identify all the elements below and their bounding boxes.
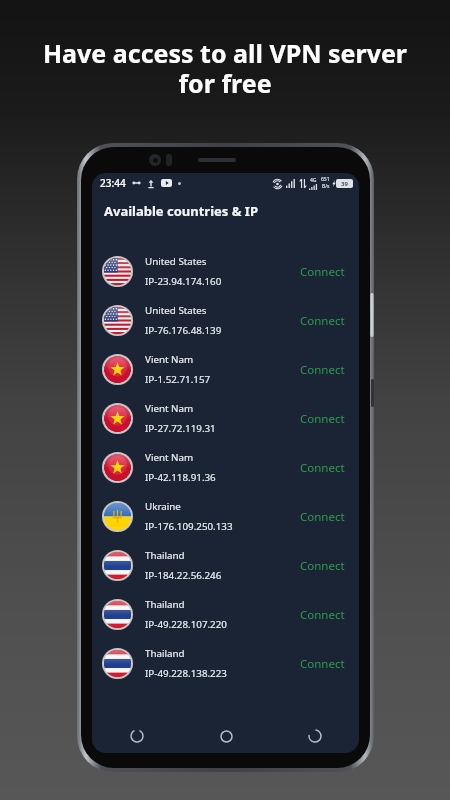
button[interactable]: Connect <box>298 502 347 532</box>
button[interactable]: Connect <box>298 306 347 336</box>
button[interactable]: Connect <box>298 257 347 287</box>
button[interactable]: Vient Nam <box>92 394 359 443</box>
staticText: Ukraine <box>145 500 181 513</box>
staticText: Available countries & IP <box>104 202 258 220</box>
button[interactable]: Thailand <box>92 639 359 688</box>
staticText: Thailand <box>145 549 185 562</box>
staticText: Connect <box>300 656 345 672</box>
staticText: Connect <box>300 607 345 623</box>
staticText: IP-184.22.56.246 <box>145 569 222 582</box>
staticText: IP-49.228.107.220 <box>145 618 227 631</box>
button[interactable]: United States <box>92 296 359 345</box>
staticText: IP-23.94.174.160 <box>145 275 222 288</box>
staticText: IP-42.118.91.36 <box>145 471 216 484</box>
button[interactable]: Connect <box>298 551 347 581</box>
button[interactable]: Connect <box>298 404 347 434</box>
staticText: Thailand <box>145 647 185 660</box>
staticText: IP-27.72.119.31 <box>145 422 216 435</box>
button[interactable]: Home <box>211 721 241 751</box>
staticText: Connect <box>300 313 345 329</box>
staticText: Connect <box>300 411 345 427</box>
staticText: 651 <box>321 176 330 183</box>
staticText: Vient Nam <box>145 353 194 366</box>
button[interactable]: Back <box>300 721 330 751</box>
button[interactable]: Recent apps <box>122 721 152 751</box>
button[interactable]: Connect <box>298 355 347 385</box>
staticText: Vient Nam <box>145 451 194 464</box>
button[interactable]: Ukraine <box>92 492 359 541</box>
staticText: B/s <box>322 183 330 190</box>
staticText: IP-1.52.71.157 <box>145 373 211 386</box>
staticText: Connect <box>300 362 345 378</box>
staticText: Connect <box>300 460 345 476</box>
button[interactable]: United States <box>92 247 359 296</box>
staticText: Vient Nam <box>145 402 194 415</box>
button[interactable]: Thailand <box>92 590 359 639</box>
staticText: IP-49.228.138.223 <box>145 667 227 680</box>
button[interactable]: Vient Nam <box>92 345 359 394</box>
staticText: 39 <box>341 180 348 188</box>
button[interactable]: Thailand <box>92 541 359 590</box>
staticText: Have access to all VPN server for free <box>12 36 438 101</box>
staticText: Connect <box>300 509 345 525</box>
button[interactable]: Connect <box>298 600 347 630</box>
staticText: Connect <box>300 264 345 280</box>
staticText: 4G <box>310 177 317 184</box>
button[interactable]: Vient Nam <box>92 443 359 492</box>
staticText: Connect <box>300 558 345 574</box>
staticText: IP-176.109.250.133 <box>145 520 233 533</box>
button[interactable]: Connect <box>298 453 347 483</box>
staticText: United States <box>145 255 207 268</box>
staticText: IP-76.176.48.139 <box>145 324 222 337</box>
staticText: 23:44 <box>100 176 126 190</box>
button[interactable]: Connect <box>298 649 347 679</box>
staticText: Thailand <box>145 598 185 611</box>
staticText: United States <box>145 304 207 317</box>
